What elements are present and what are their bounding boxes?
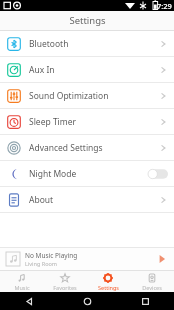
button[interactable]: Favorites bbox=[43, 271, 86, 292]
staticText: 7:29 bbox=[157, 1, 172, 11]
staticText: About bbox=[29, 194, 160, 206]
staticText: Advanced Settings bbox=[29, 142, 160, 154]
staticText: Night Mode bbox=[29, 168, 148, 180]
staticText: Music bbox=[14, 284, 30, 291]
staticText: Bluetooth bbox=[29, 38, 160, 50]
staticText: No Music Playing bbox=[25, 251, 78, 260]
button[interactable]: Settings bbox=[86, 271, 130, 292]
button[interactable]: No Music Playing bbox=[0, 248, 174, 270]
staticText: Settings bbox=[69, 14, 106, 27]
button[interactable]: Devices bbox=[130, 271, 174, 292]
staticText: Devices bbox=[142, 284, 162, 291]
button[interactable]: Play bbox=[156, 253, 168, 265]
button[interactable]: Sleep Timer bbox=[0, 109, 174, 134]
button[interactable]: Bluetooth bbox=[0, 31, 174, 56]
button[interactable]: Night Mode toggle bbox=[148, 168, 168, 180]
button[interactable]: Night Mode bbox=[0, 161, 174, 186]
staticText: Aux In bbox=[29, 64, 160, 76]
staticText: Settings bbox=[98, 284, 119, 291]
button[interactable]: Music bbox=[0, 271, 43, 292]
staticText: Sound Optimization bbox=[29, 90, 160, 102]
button[interactable]: Aux In bbox=[0, 57, 174, 82]
button[interactable]: About bbox=[0, 187, 174, 212]
staticText: Living Room bbox=[25, 260, 57, 267]
staticText: Favorites bbox=[53, 284, 77, 291]
button[interactable]: Sound Optimization bbox=[0, 83, 174, 108]
staticText: Sleep Timer bbox=[29, 116, 160, 128]
button[interactable]: Advanced Settings bbox=[0, 135, 174, 160]
